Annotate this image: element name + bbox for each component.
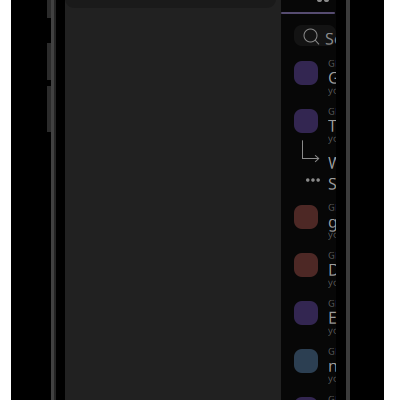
- staticText: E: [328, 307, 337, 328]
- button[interactable]: GPT: [281, 336, 336, 384]
- staticText: G: [328, 67, 340, 88]
- button[interactable]: GPT: [281, 96, 336, 144]
- staticText: you: [328, 372, 345, 384]
- staticText: GPT: [328, 345, 346, 357]
- staticText: W: [328, 152, 343, 173]
- button[interactable]: GPT: [281, 384, 336, 400]
- staticText: D: [328, 259, 340, 280]
- staticText: n: [328, 355, 338, 376]
- staticText: GPT: [328, 297, 346, 309]
- staticText: you: [328, 276, 345, 288]
- staticText: GPT: [328, 57, 346, 69]
- staticText: you: [328, 228, 345, 240]
- button[interactable]: GPT: [281, 240, 336, 288]
- button[interactable]: GPT: [281, 192, 336, 240]
- staticText: Se: [328, 173, 342, 215]
- staticText: you: [328, 324, 345, 336]
- staticText: GPT: [328, 201, 346, 213]
- staticText: Se: [325, 28, 343, 49]
- button[interactable]: GPT: [281, 48, 336, 96]
- staticText: GPT: [328, 249, 346, 261]
- button[interactable]: GPT: [281, 288, 336, 336]
- staticText: GPT: [328, 105, 346, 117]
- button[interactable]: Se: [294, 25, 336, 46]
- staticText: Ta: [328, 115, 345, 136]
- staticText: you: [328, 132, 345, 144]
- staticText: g: [328, 211, 338, 232]
- staticText: you: [328, 84, 345, 96]
- staticText: GPT: [328, 393, 346, 400]
